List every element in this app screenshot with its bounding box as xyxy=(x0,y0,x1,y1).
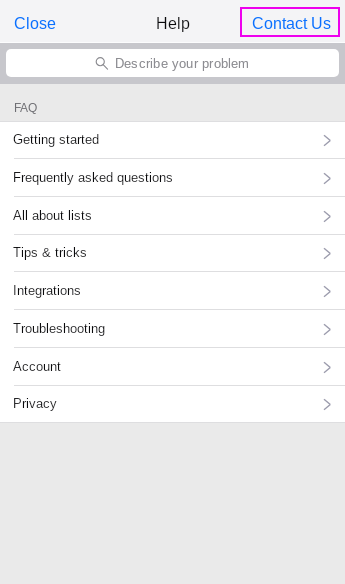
staticText: Contact Us xyxy=(252,15,331,33)
staticText: Troubleshooting xyxy=(13,321,105,336)
button[interactable]: Search xyxy=(6,49,339,77)
staticText: Help xyxy=(156,15,190,33)
staticText: Describe your problem xyxy=(115,56,250,71)
staticText: Close xyxy=(14,15,56,33)
button[interactable]: Troubleshooting xyxy=(0,310,345,348)
button[interactable]: Integrations xyxy=(0,272,345,310)
staticText: FAQ xyxy=(14,101,38,114)
staticText: Integrations xyxy=(13,283,81,298)
button[interactable]: Contact Us xyxy=(240,7,340,37)
staticText: Frequently asked questions xyxy=(13,170,173,185)
button[interactable]: Close xyxy=(8,9,62,39)
button[interactable]: Getting started xyxy=(0,122,345,159)
staticText: All about lists xyxy=(13,208,92,223)
button[interactable]: Privacy xyxy=(0,386,345,422)
button[interactable]: Frequently asked questions xyxy=(0,159,345,197)
button[interactable]: Account xyxy=(0,348,345,386)
staticText: Privacy xyxy=(13,396,57,411)
button[interactable]: Tips & tricks xyxy=(0,235,345,272)
staticText: Account xyxy=(13,359,61,374)
staticText: Tips & tricks xyxy=(13,245,87,260)
button[interactable]: All about lists xyxy=(0,197,345,235)
staticText: Getting started xyxy=(13,132,99,147)
